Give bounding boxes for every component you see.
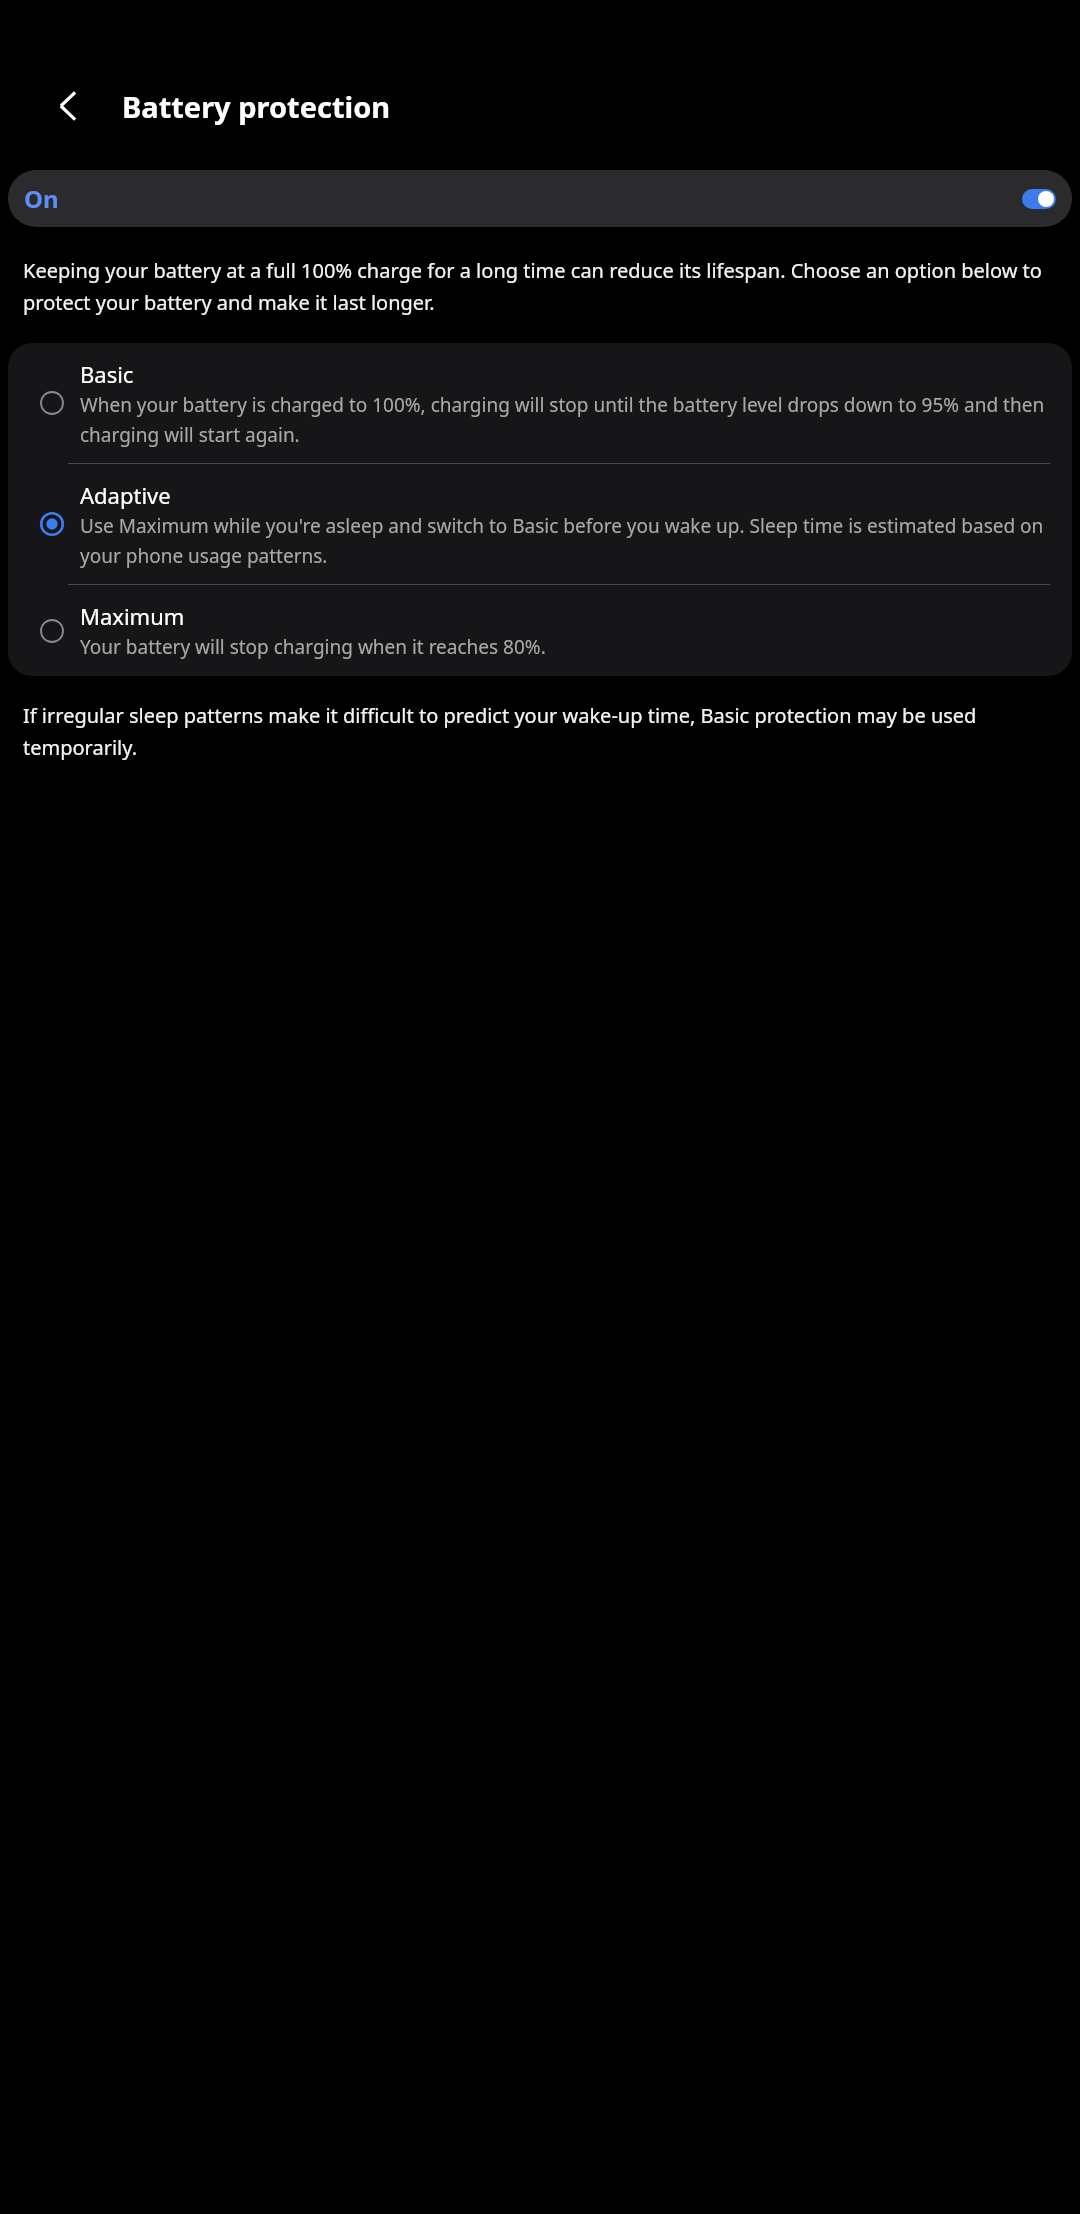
staticText: On [24,182,59,215]
staticText: Adaptive [80,480,171,510]
staticText: Use Maximum while you're asleep and swit… [80,513,1050,568]
button[interactable]: Basic [8,343,1072,463]
staticText: Keeping your battery at a full 100% char… [23,257,1062,316]
button[interactable]: Back [40,77,98,135]
button[interactable]: Maximum [8,585,1072,676]
staticText: Your battery will stop charging when it … [80,634,546,660]
staticText: When your battery is charged to 100%, ch… [80,392,1050,447]
button[interactable]: Adaptive [8,464,1072,584]
staticText: Battery protection [122,87,391,126]
staticText: Maximum [80,601,185,631]
staticText: Basic [80,359,134,389]
button[interactable]: On [8,170,1072,227]
staticText: If irregular sleep patterns make it diff… [23,702,1062,761]
other: Battery protection toggle [1022,189,1056,209]
